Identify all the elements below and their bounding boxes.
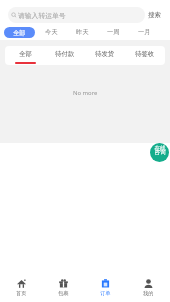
button[interactable]: 包裹 — [42, 272, 84, 302]
staticText: 在线 — [154, 145, 166, 152]
staticText: 请输入转运单号 — [18, 11, 66, 20]
button[interactable]: 待付款 — [45, 46, 85, 65]
staticText: 订单 — [100, 290, 111, 297]
button[interactable]: 在线 — [150, 143, 169, 162]
staticText: 包裹 — [58, 290, 69, 297]
staticText: 全部 — [13, 29, 26, 37]
button[interactable]: 一周 — [98, 25, 129, 39]
button[interactable]: 全部 — [4, 27, 35, 38]
button[interactable]: 订单 — [84, 272, 127, 302]
staticText: 今天 — [45, 28, 58, 36]
staticText: 昨天 — [76, 28, 89, 36]
button[interactable]: 请输入转运单号 — [8, 7, 145, 23]
button[interactable]: 待签收 — [125, 46, 165, 65]
staticText: 一月 — [138, 28, 151, 36]
button[interactable]: 待发货 — [85, 46, 125, 65]
button[interactable]: 昨天 — [67, 25, 98, 39]
staticText: No more — [73, 89, 98, 97]
staticText: 待付款 — [55, 50, 75, 58]
staticText: 搜索 — [148, 11, 161, 19]
button[interactable]: 搜索 — [144, 5, 164, 25]
button[interactable]: 全部 — [5, 46, 45, 65]
button[interactable]: 首页 — [0, 272, 42, 302]
button[interactable]: 今天 — [35, 25, 67, 39]
button[interactable]: 我的 — [127, 272, 170, 302]
button[interactable]: 一月 — [129, 25, 160, 39]
staticText: 全部 — [19, 50, 32, 58]
staticText: 待发货 — [95, 50, 115, 58]
staticText: 待签收 — [135, 50, 155, 58]
staticText: 我的 — [143, 290, 154, 297]
staticText: 一周 — [107, 28, 120, 36]
staticText: 咨询 — [154, 149, 166, 156]
staticText: 首页 — [16, 290, 27, 297]
